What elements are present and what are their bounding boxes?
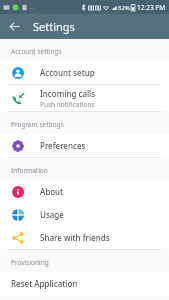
button[interactable]: Reset Application: [0, 272, 169, 295]
staticText: Provisioning: [11, 258, 49, 267]
button[interactable]: About: [0, 180, 169, 203]
staticText: Push notifications: [40, 100, 95, 109]
staticText: Usage: [40, 209, 64, 220]
button[interactable]: Incoming calls: [0, 85, 169, 111]
staticText: Incoming calls: [40, 88, 96, 99]
staticText: About: [40, 186, 64, 197]
staticText: Share with friends: [40, 232, 110, 243]
button[interactable]: Share with friends: [0, 226, 169, 249]
staticText: Account settings: [11, 47, 62, 56]
button[interactable]: Preferences: [0, 134, 169, 157]
staticText: Information: [11, 166, 48, 175]
staticText: Settings: [33, 19, 75, 34]
staticText: Reset Application: [11, 278, 78, 289]
button[interactable]: Account setup: [0, 61, 169, 84]
button[interactable]: Usage: [0, 203, 169, 226]
staticText: 12:23 PM: [137, 3, 166, 12]
staticText: Preferences: [40, 140, 86, 151]
button[interactable]: Back: [5, 17, 24, 36]
staticText: 62%: [118, 4, 130, 12]
staticText: ...: [30, 4, 35, 11]
staticText: Program settings: [11, 120, 64, 129]
staticText: Account setup: [40, 67, 95, 78]
